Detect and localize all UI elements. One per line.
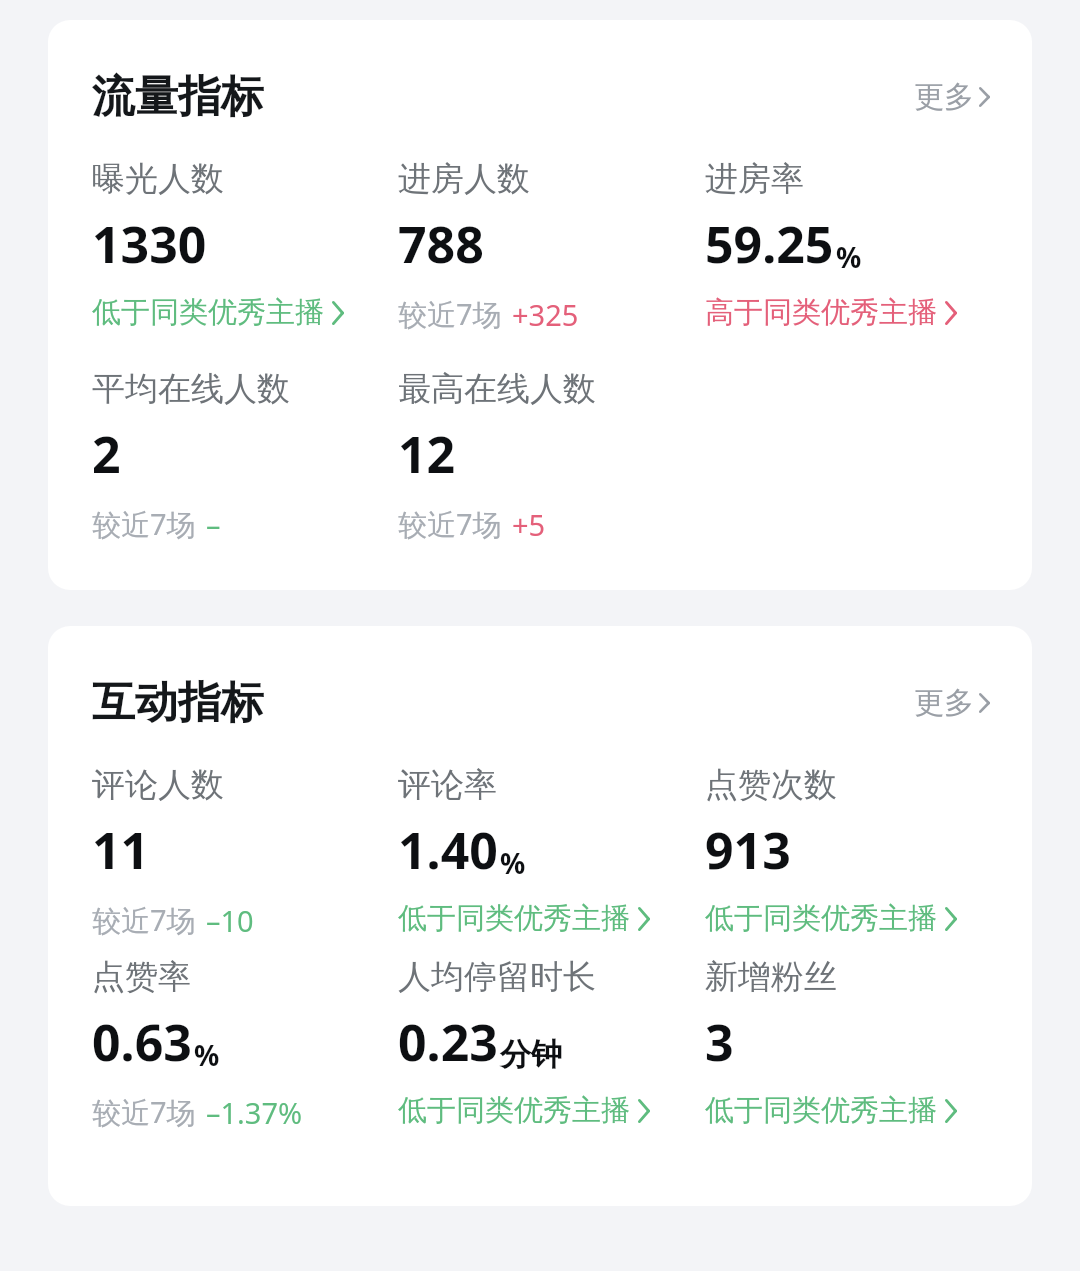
staticText: 11 <box>92 816 150 884</box>
staticText: 互动指标 <box>92 676 264 730</box>
staticText: 2 <box>92 420 121 488</box>
staticText: 较近7场 <box>398 504 502 544</box>
staticText: 分钟 <box>500 1035 562 1074</box>
staticText: 更多 <box>914 78 974 116</box>
button[interactable]: 点赞率 <box>92 948 398 1136</box>
staticText: 曝光人数 <box>92 158 224 200</box>
staticText: +5 <box>512 505 546 544</box>
staticText: 低于同类优秀主播 <box>705 1092 937 1129</box>
staticText: 低于同类优秀主播 <box>705 900 937 937</box>
staticText: 点赞次数 <box>705 764 837 806</box>
staticText: 人均停留时长 <box>398 956 596 998</box>
staticText: 高于同类优秀主播 <box>705 294 937 331</box>
staticText: 1.40 <box>398 816 498 884</box>
button[interactable]: 更多 <box>908 676 996 730</box>
staticText: –10 <box>206 901 254 940</box>
staticText: 较近7场 <box>398 294 502 334</box>
staticText: 较近7场 <box>92 1092 196 1132</box>
button[interactable]: 新增粉丝 <box>705 948 1012 1133</box>
staticText: 低于同类优秀主播 <box>398 1092 630 1129</box>
button[interactable]: 进房率 <box>705 150 1012 335</box>
staticText: % <box>836 238 862 276</box>
staticText: 评论率 <box>398 764 497 806</box>
staticText: 低于同类优秀主播 <box>398 900 630 937</box>
staticText: 较近7场 <box>92 504 196 544</box>
staticText: – <box>206 505 221 544</box>
staticText: 新增粉丝 <box>705 956 837 998</box>
button[interactable]: 曝光人数 <box>92 150 398 335</box>
staticText: 12 <box>398 420 456 488</box>
button[interactable]: 更多 <box>908 70 996 124</box>
staticText: 进房率 <box>705 158 804 200</box>
staticText: 1330 <box>92 210 207 278</box>
button[interactable]: 人均停留时长 <box>398 948 705 1133</box>
staticText: % <box>500 844 526 882</box>
staticText: 最高在线人数 <box>398 368 596 410</box>
staticText: 788 <box>398 210 484 278</box>
staticText: 更多 <box>914 684 974 722</box>
button[interactable]: 评论率 <box>398 756 705 941</box>
staticText: 3 <box>705 1008 734 1076</box>
staticText: 59.25 <box>705 210 834 278</box>
staticText: 低于同类优秀主播 <box>92 294 324 331</box>
staticText: 评论人数 <box>92 764 224 806</box>
staticText: 进房人数 <box>398 158 530 200</box>
button[interactable]: 评论人数 <box>92 756 398 944</box>
staticText: +325 <box>512 295 579 334</box>
staticText: 平均在线人数 <box>92 368 290 410</box>
staticText: 0.63 <box>92 1008 192 1076</box>
staticText: 0.23 <box>398 1008 498 1076</box>
button[interactable]: 进房人数 <box>398 150 705 338</box>
button[interactable]: 点赞次数 <box>705 756 1012 941</box>
staticText: % <box>194 1036 220 1074</box>
staticText: 流量指标 <box>92 70 264 124</box>
staticText: 点赞率 <box>92 956 191 998</box>
staticText: 较近7场 <box>92 900 196 940</box>
button[interactable]: 最高在线人数 <box>398 360 705 548</box>
button[interactable]: 平均在线人数 <box>92 360 398 548</box>
staticText: 913 <box>705 816 791 884</box>
staticText: –1.37% <box>206 1093 303 1132</box>
